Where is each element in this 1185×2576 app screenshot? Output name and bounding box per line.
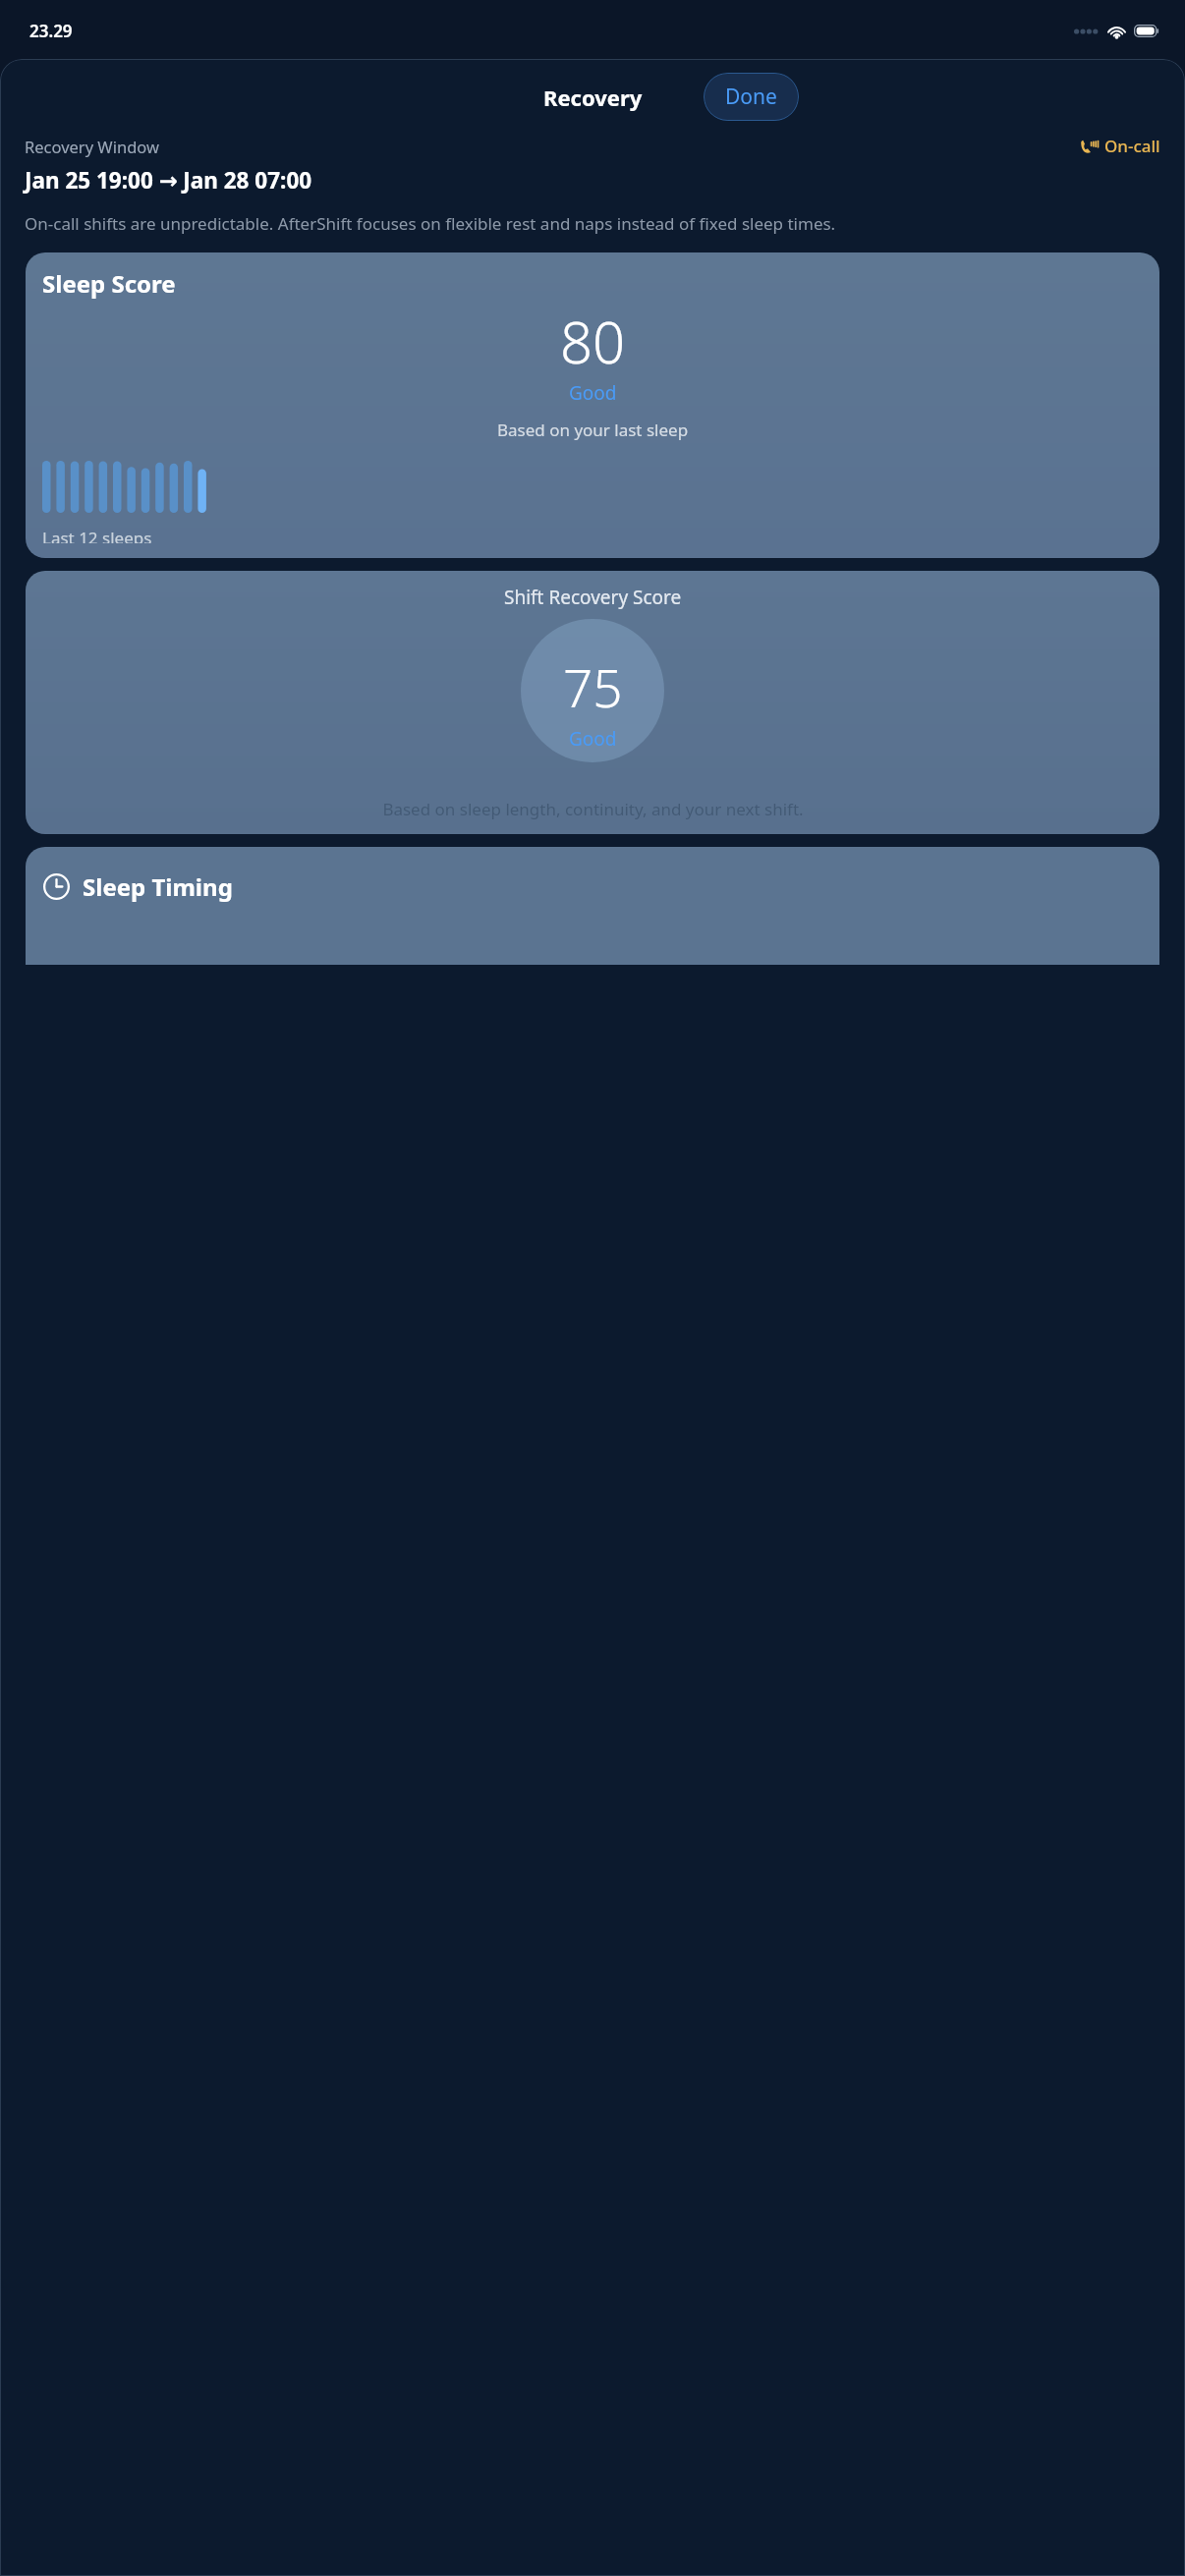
staticText: Done bbox=[725, 83, 777, 111]
staticText: Shift Recovery Score bbox=[504, 585, 682, 610]
staticText: Based on your last sleep bbox=[497, 419, 689, 441]
staticText: Last 12 sleeps bbox=[42, 527, 152, 543]
staticText: Sleep Score bbox=[42, 267, 176, 300]
staticText: 23.29 bbox=[29, 20, 73, 42]
staticText: On-call shifts are unpredictable. AfterS… bbox=[25, 212, 836, 235]
staticText: Recovery Window bbox=[25, 136, 159, 157]
staticText: On-call bbox=[1104, 135, 1160, 157]
button[interactable]: Sleep Timing bbox=[26, 847, 1159, 965]
staticText: Recovery bbox=[543, 83, 643, 112]
staticText: 75 bbox=[563, 651, 623, 722]
staticText: Sleep Timing bbox=[83, 870, 233, 903]
button[interactable]: Shift Recovery Score bbox=[26, 571, 1159, 834]
staticText: Good bbox=[569, 726, 617, 752]
button[interactable]: Sleep Score bbox=[26, 252, 1159, 558]
staticText: 80 bbox=[560, 303, 626, 380]
staticText: Good bbox=[569, 380, 617, 406]
button[interactable]: Done bbox=[704, 73, 799, 121]
staticText: Jan 25 19:00 → Jan 28 07:00 bbox=[25, 165, 312, 196]
staticText: Based on sleep length, continuity, and y… bbox=[382, 798, 804, 820]
button[interactable]: On-call bbox=[1080, 135, 1160, 157]
